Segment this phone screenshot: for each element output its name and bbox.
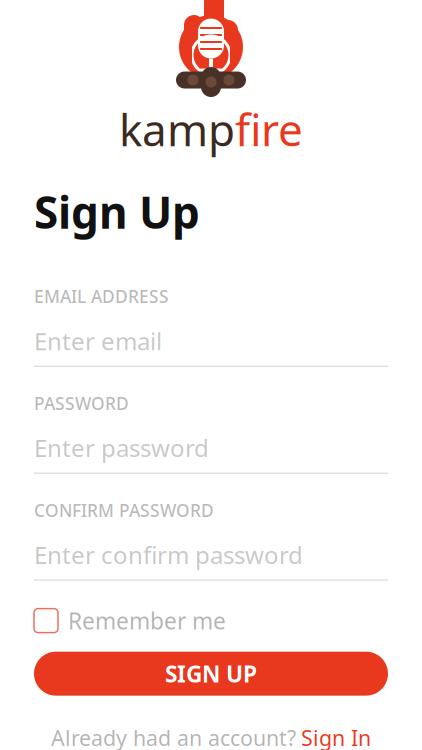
staticText: Enter email [34, 325, 162, 357]
staticText: PASSWORD [34, 392, 129, 415]
staticText: kamp [119, 100, 235, 158]
button[interactable]: Already had an account? [31, 716, 391, 750]
staticText: Already had an account? [51, 724, 296, 750]
button[interactable]: Remember me [0, 597, 422, 644]
staticText: fire [235, 100, 303, 158]
staticText: Remember me [68, 605, 226, 636]
button[interactable]: EMAIL ADDRESS [34, 285, 388, 367]
staticText: EMAIL ADDRESS [34, 285, 169, 308]
staticText: Enter password [34, 432, 209, 464]
staticText: SIGN UP [165, 659, 257, 689]
staticText: Sign Up [34, 182, 200, 241]
button[interactable]: CONFIRM PASSWORD [34, 499, 388, 581]
staticText: Sign In [301, 724, 371, 750]
staticText: CONFIRM PASSWORD [34, 499, 214, 522]
button[interactable]: PASSWORD [34, 392, 388, 474]
staticText: Enter confirm password [34, 539, 303, 571]
button[interactable]: SIGN UP [0, 652, 422, 696]
